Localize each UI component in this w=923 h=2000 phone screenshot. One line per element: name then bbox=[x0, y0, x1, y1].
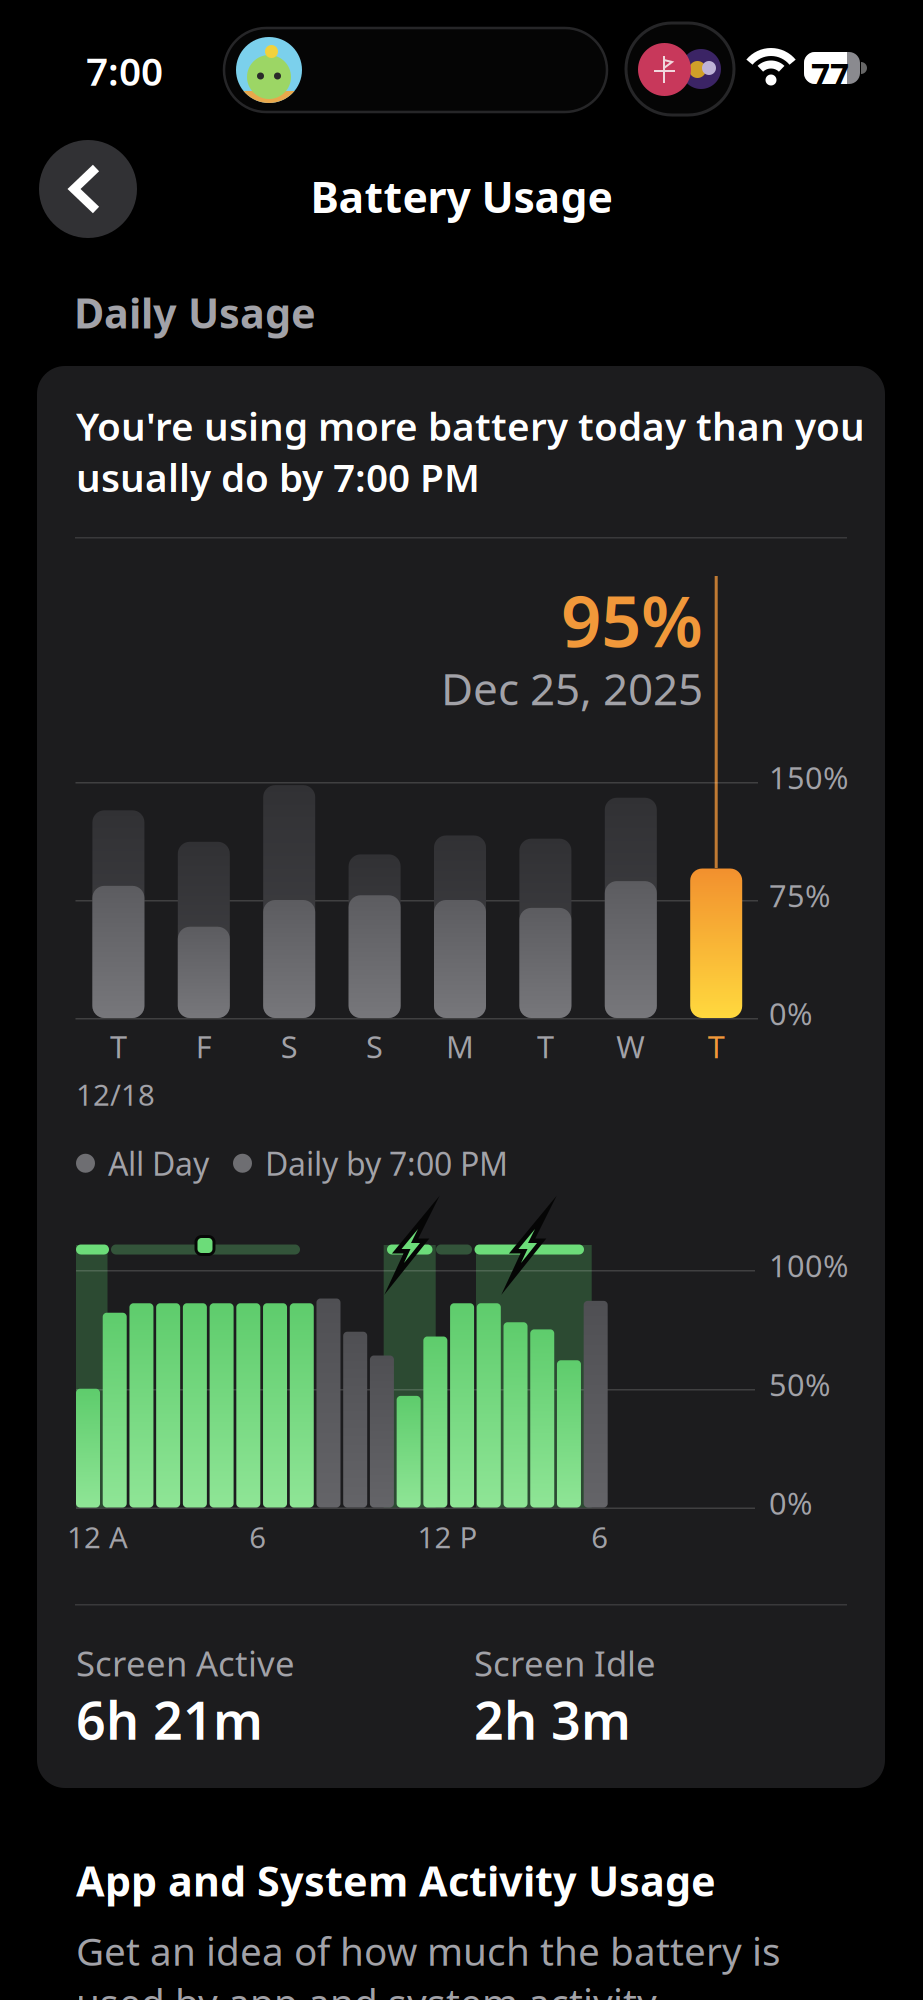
staticText: 6 bbox=[591, 1517, 608, 1556]
staticText: 12 P bbox=[417, 1517, 477, 1556]
staticText: Dec 25, 2025 bbox=[441, 659, 703, 717]
staticText: 6 bbox=[249, 1517, 266, 1556]
staticText: 50% bbox=[769, 1364, 830, 1405]
staticText: 6h 21m bbox=[76, 1685, 263, 1754]
staticText: 0% bbox=[769, 1482, 812, 1523]
staticText: Get an idea of how much the battery is u… bbox=[76, 1925, 781, 2000]
staticText: 7:00 bbox=[86, 45, 163, 96]
staticText: M bbox=[446, 1026, 474, 1067]
staticText: Screen Active bbox=[76, 1640, 295, 1686]
staticText: 0% bbox=[769, 993, 812, 1034]
staticText: 77 bbox=[811, 53, 849, 97]
staticText: 12 A bbox=[67, 1517, 128, 1556]
staticText: App and System Activity Usage bbox=[76, 1853, 716, 1908]
staticText: 95% bbox=[561, 573, 703, 667]
staticText: S bbox=[281, 1026, 298, 1067]
staticText: 12/18 bbox=[76, 1075, 155, 1114]
staticText: S bbox=[366, 1026, 383, 1067]
staticText: T bbox=[708, 1026, 725, 1067]
staticText: All Day bbox=[108, 1142, 209, 1184]
staticText: 100% bbox=[769, 1245, 848, 1286]
staticText: W bbox=[616, 1026, 645, 1067]
staticText: 150% bbox=[769, 757, 848, 798]
staticText: 2h 3m bbox=[474, 1685, 631, 1754]
staticText: F bbox=[196, 1026, 212, 1067]
staticText: T bbox=[110, 1026, 127, 1067]
staticText: 75% bbox=[769, 875, 830, 916]
staticText: T bbox=[537, 1026, 554, 1067]
staticText: Battery Usage bbox=[310, 168, 612, 225]
staticText: Daily by 7:00 PM bbox=[265, 1142, 508, 1184]
staticText: Daily Usage bbox=[74, 285, 316, 340]
staticText: You're using more battery today than you… bbox=[76, 400, 865, 503]
button[interactable]: Back bbox=[39, 140, 137, 238]
staticText: Screen Idle bbox=[474, 1640, 656, 1686]
